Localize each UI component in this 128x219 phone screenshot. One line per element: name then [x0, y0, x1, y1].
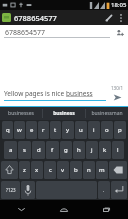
button[interactable]: q [2, 121, 13, 139]
button[interactable]: j [86, 141, 98, 159]
staticText: w [17, 126, 22, 134]
staticText: i [93, 126, 95, 134]
button[interactable]: Enter [111, 181, 127, 199]
staticText: y [66, 126, 70, 134]
button[interactable]: f [46, 141, 59, 159]
staticText: z [23, 166, 26, 174]
staticText: 130/1 [111, 85, 123, 91]
staticText: n [87, 166, 91, 174]
button[interactable]: u [75, 121, 87, 139]
button[interactable]: 6788654577 [5, 28, 110, 38]
button[interactable]: Voice input [21, 181, 35, 199]
staticText: j [91, 146, 93, 154]
button[interactable]: c [44, 161, 56, 179]
staticText: c [49, 166, 52, 174]
staticText: business [66, 89, 93, 98]
staticText: l [117, 146, 119, 154]
button[interactable]: d [32, 141, 45, 159]
button[interactable]: Attach [102, 11, 115, 24]
button[interactable]: ?123 [1, 181, 20, 199]
staticText: e [30, 126, 34, 134]
button[interactable]: r [38, 121, 49, 139]
button[interactable]: business [43, 107, 85, 120]
staticText: 18:05 [111, 1, 127, 9]
button[interactable]: b [70, 161, 82, 179]
staticText: q [6, 126, 10, 134]
staticText: s [23, 146, 26, 154]
button[interactable]: y [62, 121, 74, 139]
button[interactable]: Recent apps [85, 200, 128, 219]
staticText: b [74, 166, 78, 174]
button[interactable]: v [57, 161, 69, 179]
staticText: a [9, 146, 13, 154]
staticText: f [51, 146, 54, 154]
staticText: d [37, 146, 41, 154]
staticText: businessman [91, 110, 123, 117]
staticText: x [35, 166, 39, 174]
button[interactable]: Shift [1, 161, 18, 179]
staticText: ?123 [6, 187, 16, 193]
button[interactable]: m [96, 161, 108, 179]
staticText: 6788654577 [14, 13, 102, 23]
button[interactable]: h [73, 141, 85, 159]
staticText: business [53, 110, 75, 117]
button[interactable]: Send [108, 80, 126, 106]
button[interactable]: l [112, 141, 124, 159]
button[interactable]: Add contact [114, 27, 125, 38]
button[interactable]: businesses [0, 107, 42, 120]
staticText: Yellow pages is nice [4, 89, 66, 98]
staticText: v [61, 166, 65, 174]
staticText: g [64, 146, 68, 154]
staticText: businesses [8, 110, 34, 117]
staticText: h [77, 146, 81, 154]
button[interactable]: x [31, 161, 43, 179]
staticText: . [103, 187, 105, 193]
staticText: r [42, 126, 45, 134]
button[interactable]: More options [115, 12, 126, 23]
button[interactable]: w [14, 121, 25, 139]
button[interactable]: o [101, 121, 113, 139]
button[interactable]: p [114, 121, 126, 139]
button[interactable]: Messaging app [2, 13, 11, 22]
staticText: k [103, 146, 107, 154]
staticText: p [118, 126, 122, 134]
button[interactable]: businessman [86, 107, 128, 120]
button[interactable]: k [99, 141, 111, 159]
button[interactable]: Home [42, 200, 85, 219]
button[interactable]: s [18, 141, 31, 159]
button[interactable]: i [88, 121, 100, 139]
button[interactable]: t [50, 121, 61, 139]
button[interactable]: g [60, 141, 72, 159]
button[interactable]: n [83, 161, 95, 179]
staticText: t [54, 126, 57, 134]
button[interactable]: Backspace [109, 161, 127, 179]
button[interactable]: e [26, 121, 37, 139]
staticText: u [79, 126, 83, 134]
staticText: m [99, 166, 105, 174]
button[interactable]: . [98, 181, 110, 199]
button[interactable]: z [19, 161, 30, 179]
staticText: 6788654577 [5, 28, 46, 38]
staticText: o [105, 126, 109, 134]
button[interactable]: Hide keyboard [0, 200, 42, 219]
button[interactable]: a [4, 141, 17, 159]
